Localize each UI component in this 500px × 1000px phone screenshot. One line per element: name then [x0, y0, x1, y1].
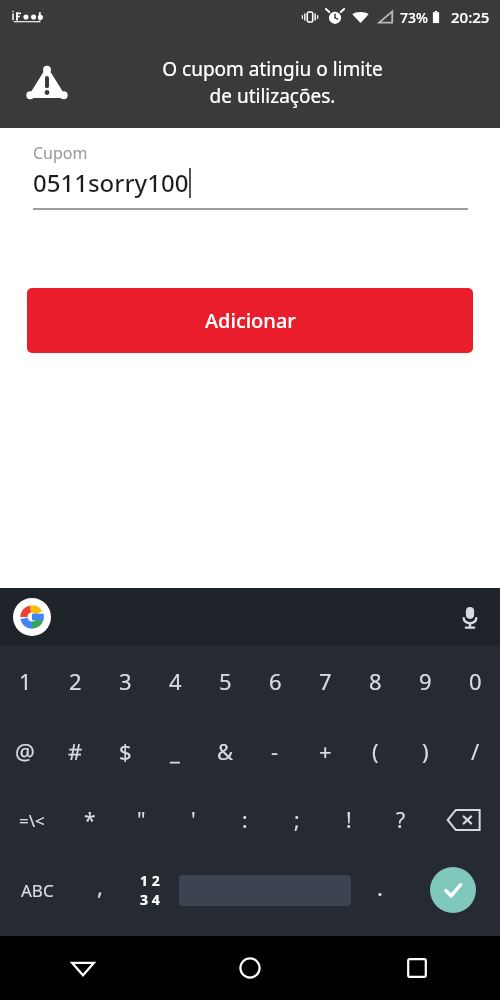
button[interactable]: 4	[150, 646, 200, 716]
button[interactable]: '	[167, 786, 219, 854]
staticText: 73%	[400, 8, 428, 27]
staticText: $	[119, 736, 132, 766]
button[interactable]: ?	[375, 786, 427, 854]
button[interactable]: 0	[450, 646, 500, 716]
button[interactable]: Back	[0, 936, 166, 1000]
button[interactable]: Enter	[430, 867, 476, 913]
button[interactable]: Adicionar	[27, 288, 473, 353]
button[interactable]: Google	[12, 597, 52, 637]
staticText: =\<	[19, 809, 45, 832]
button[interactable]: Recents	[333, 936, 500, 1000]
button[interactable]: ;	[271, 786, 323, 854]
staticText: -	[271, 736, 279, 766]
staticText: @	[15, 736, 35, 766]
staticText: 0	[469, 666, 482, 696]
staticText: :	[242, 806, 248, 835]
button[interactable]: Backspace	[427, 786, 500, 854]
button[interactable]: ABC	[0, 854, 75, 926]
button[interactable]: Voice input	[452, 599, 488, 635]
button[interactable]: Home	[166, 936, 333, 1000]
button[interactable]: )	[400, 716, 450, 786]
button[interactable]: -	[250, 716, 300, 786]
staticText: &	[217, 736, 234, 766]
button[interactable]: .	[355, 854, 405, 926]
staticText: O cupom atingiu o limite de utilizações.	[162, 56, 383, 109]
button[interactable]: 5	[200, 646, 250, 716]
staticText: ABC	[21, 879, 54, 902]
staticText: 5	[219, 666, 232, 696]
staticText: 9	[419, 666, 432, 696]
staticText: (	[372, 736, 379, 766]
button[interactable]: 2	[50, 646, 100, 716]
button[interactable]: $	[100, 716, 150, 786]
button[interactable]: 3	[100, 646, 150, 716]
staticText: 3	[119, 666, 132, 696]
button[interactable]: 1	[0, 646, 50, 716]
staticText: 1	[19, 666, 32, 696]
staticText: '	[191, 806, 196, 835]
staticText: ;	[294, 806, 300, 835]
button[interactable]: "	[115, 786, 167, 854]
button[interactable]: &	[200, 716, 250, 786]
staticText: 8	[369, 666, 382, 696]
staticText: "	[137, 806, 146, 835]
staticText: 0511sorry100	[33, 166, 189, 199]
button[interactable]: Numbers	[125, 854, 175, 926]
button[interactable]: 8	[350, 646, 400, 716]
button[interactable]: 6	[250, 646, 300, 716]
staticText: Cupom	[33, 142, 88, 164]
staticText: *	[84, 806, 96, 835]
staticText: /	[471, 736, 480, 766]
button[interactable]: !	[323, 786, 375, 854]
staticText: 7	[319, 666, 332, 696]
button[interactable]: #	[50, 716, 100, 786]
button[interactable]: ,	[75, 854, 125, 926]
button[interactable]: _	[150, 716, 200, 786]
staticText: +	[319, 736, 332, 766]
staticText: 2	[69, 666, 82, 696]
button[interactable]: (	[350, 716, 400, 786]
staticText: Adicionar	[205, 307, 296, 334]
staticText: 20:25	[451, 7, 490, 27]
staticText: _	[170, 736, 180, 766]
staticText: ?	[396, 806, 406, 835]
button[interactable]: *	[64, 786, 115, 854]
staticText: 4	[169, 666, 182, 696]
staticText: 1 2	[140, 871, 160, 890]
button[interactable]: +	[300, 716, 350, 786]
button[interactable]: :	[219, 786, 271, 854]
staticText: #	[68, 736, 83, 766]
staticText: 6	[269, 666, 282, 696]
staticText: !	[346, 806, 352, 835]
button[interactable]: =\<	[0, 786, 64, 854]
button[interactable]: /	[450, 716, 500, 786]
button[interactable]: 7	[300, 646, 350, 716]
button[interactable]: @	[0, 716, 50, 786]
button[interactable]: 9	[400, 646, 450, 716]
staticText: .	[377, 872, 383, 902]
staticText: )	[422, 736, 429, 766]
staticText: ,	[97, 871, 103, 901]
staticText: 3 4	[140, 890, 160, 909]
